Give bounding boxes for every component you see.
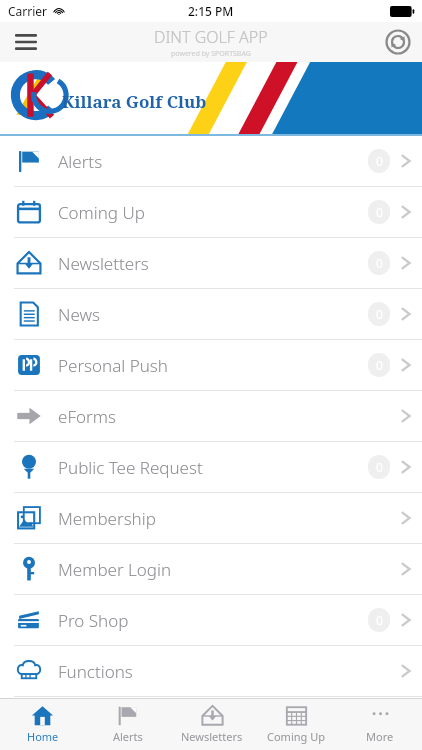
staticText: 0 [376,612,383,628]
button[interactable]: Pro Shop [0,595,422,645]
button[interactable]: Functions [0,646,422,696]
button[interactable]: Coming Up [254,698,338,750]
staticText: More [366,729,394,744]
staticText: Killara Golf Club [62,90,207,113]
staticText: Newsletters [58,252,368,275]
staticText: News [58,303,368,326]
staticText: Home [27,729,59,744]
staticText: Public Tee Request [58,456,368,479]
staticText: 0 [376,153,383,169]
staticText: 0 [376,204,383,220]
staticText: Newsletters [181,729,243,744]
staticText: 2:15 PM [188,3,234,19]
button[interactable]: Newsletters [0,238,422,288]
staticText: 0 [376,306,383,322]
button[interactable]: Membership [0,493,422,543]
button[interactable]: Refresh [376,22,420,62]
staticText: Membership [58,507,368,530]
staticText: Alerts [113,729,143,744]
staticText: DINT GOLF APP [154,26,268,48]
staticText: 0 [376,255,383,271]
staticText: Coming Up [267,729,325,744]
button[interactable]: Newsletters [170,698,254,750]
button[interactable]: Coming Up [0,187,422,237]
staticText: Alerts [58,150,368,173]
staticText: eForms [58,405,368,428]
button[interactable]: Alerts [0,136,422,186]
staticText: 0 [376,357,383,373]
button[interactable]: Alerts [85,698,170,750]
staticText: powered by SPORTSBAG [171,49,251,59]
button[interactable]: Killara Golf Club [0,62,422,134]
staticText: Coming Up [58,201,368,224]
staticText: Member Login [58,558,368,581]
button[interactable]: Personal Push [0,340,422,390]
button[interactable]: More [338,698,422,750]
staticText: Pro Shop [58,609,368,632]
button[interactable]: Public Tee Request [0,442,422,492]
staticText: 0 [376,459,383,475]
button[interactable]: eForms [0,391,422,441]
staticText: Personal Push [58,354,368,377]
button[interactable]: News [0,289,422,339]
staticText: Carrier [8,3,48,19]
button[interactable]: Menu [4,22,48,62]
button[interactable]: Home [0,698,85,750]
staticText: Functions [58,660,368,683]
button[interactable]: Member Login [0,544,422,594]
